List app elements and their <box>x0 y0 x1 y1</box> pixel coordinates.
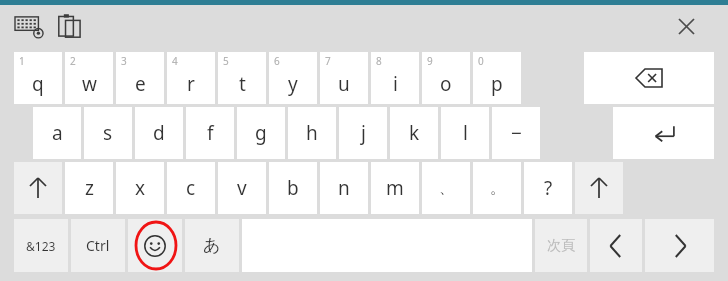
button[interactable]: m <box>371 162 419 214</box>
staticText: 7 <box>325 54 331 68</box>
staticText: d <box>153 120 165 146</box>
staticText: u <box>338 71 350 97</box>
staticText: i <box>393 71 398 97</box>
staticText: r <box>187 71 195 97</box>
button[interactable]: 8 <box>371 52 419 104</box>
button[interactable]: Clipboard <box>56 12 84 40</box>
staticText: t <box>239 71 246 97</box>
staticText: c <box>186 175 196 201</box>
button[interactable]: 6 <box>269 52 317 104</box>
staticText: a <box>52 120 63 146</box>
staticText: v <box>237 175 247 201</box>
button[interactable]: 。 <box>473 162 521 214</box>
button[interactable]: ? <box>524 162 572 214</box>
staticText: j <box>361 120 366 146</box>
staticText: q <box>32 71 44 97</box>
staticText: n <box>338 175 350 201</box>
staticText: e <box>135 71 146 97</box>
button[interactable]: Backspace <box>584 52 714 104</box>
staticText: 9 <box>427 54 433 68</box>
button[interactable]: l <box>441 107 489 159</box>
staticText: k <box>409 120 420 146</box>
button[interactable]: あ <box>185 219 239 272</box>
button[interactable]: Up <box>575 162 623 214</box>
button[interactable]: 9 <box>422 52 470 104</box>
button[interactable]: Enter <box>613 107 714 159</box>
button[interactable]: Previous <box>590 219 642 272</box>
button[interactable]: 、 <box>422 162 470 214</box>
button[interactable]: a <box>33 107 81 159</box>
staticText: p <box>491 71 503 97</box>
staticText: m <box>386 175 404 201</box>
button[interactable]: j <box>339 107 387 159</box>
staticText: 2 <box>70 54 76 68</box>
staticText: &123 <box>26 238 56 254</box>
staticText: 6 <box>274 54 280 68</box>
button[interactable]: v <box>218 162 266 214</box>
button[interactable]: Shift <box>14 162 62 214</box>
staticText: 3 <box>121 54 127 68</box>
button[interactable]: &123 <box>14 219 68 272</box>
button[interactable]: Close keyboard <box>664 10 708 42</box>
button[interactable]: k <box>390 107 438 159</box>
button[interactable]: 0 <box>473 52 521 104</box>
staticText: o <box>440 71 452 97</box>
staticText: b <box>287 175 299 201</box>
staticText: s <box>103 120 113 146</box>
button[interactable]: 3 <box>116 52 164 104</box>
staticText: y <box>288 71 298 97</box>
button[interactable]: x <box>116 162 164 214</box>
staticText: 、 <box>439 179 454 198</box>
button[interactable]: s <box>84 107 132 159</box>
staticText: 8 <box>376 54 382 68</box>
button[interactable]: 2 <box>65 52 113 104</box>
button[interactable]: 次頁 <box>535 219 587 272</box>
staticText: ? <box>544 175 553 201</box>
staticText: z <box>85 175 94 201</box>
staticText: w <box>82 71 97 97</box>
button[interactable]: − <box>492 107 540 159</box>
button[interactable]: 1 <box>14 52 62 104</box>
staticText: 。 <box>490 179 505 198</box>
staticText: 1 <box>19 54 25 68</box>
staticText: l <box>463 120 468 146</box>
button[interactable]: h <box>288 107 336 159</box>
staticText: Ctrl <box>86 236 110 255</box>
staticText: あ <box>203 235 221 256</box>
staticText: g <box>255 120 267 146</box>
button[interactable]: z <box>65 162 113 214</box>
staticText: f <box>207 120 214 146</box>
button[interactable]: g <box>237 107 285 159</box>
button[interactable]: b <box>269 162 317 214</box>
button[interactable]: n <box>320 162 368 214</box>
staticText: x <box>135 175 146 201</box>
button[interactable]: Next <box>645 219 714 272</box>
button[interactable]: Emoji <box>128 219 182 272</box>
button[interactable]: 4 <box>167 52 215 104</box>
button[interactable]: 7 <box>320 52 368 104</box>
button[interactable]: d <box>135 107 183 159</box>
button[interactable]: c <box>167 162 215 214</box>
staticText: 4 <box>172 54 178 68</box>
button[interactable]: Keyboard settings <box>15 14 45 38</box>
staticText: 0 <box>478 54 484 68</box>
staticText: h <box>306 120 318 146</box>
staticText: − <box>511 120 522 146</box>
staticText: 次頁 <box>547 237 575 255</box>
button[interactable]: 5 <box>218 52 266 104</box>
staticText: 5 <box>223 54 229 68</box>
button[interactable]: f <box>186 107 234 159</box>
button[interactable]: Ctrl <box>71 219 125 272</box>
